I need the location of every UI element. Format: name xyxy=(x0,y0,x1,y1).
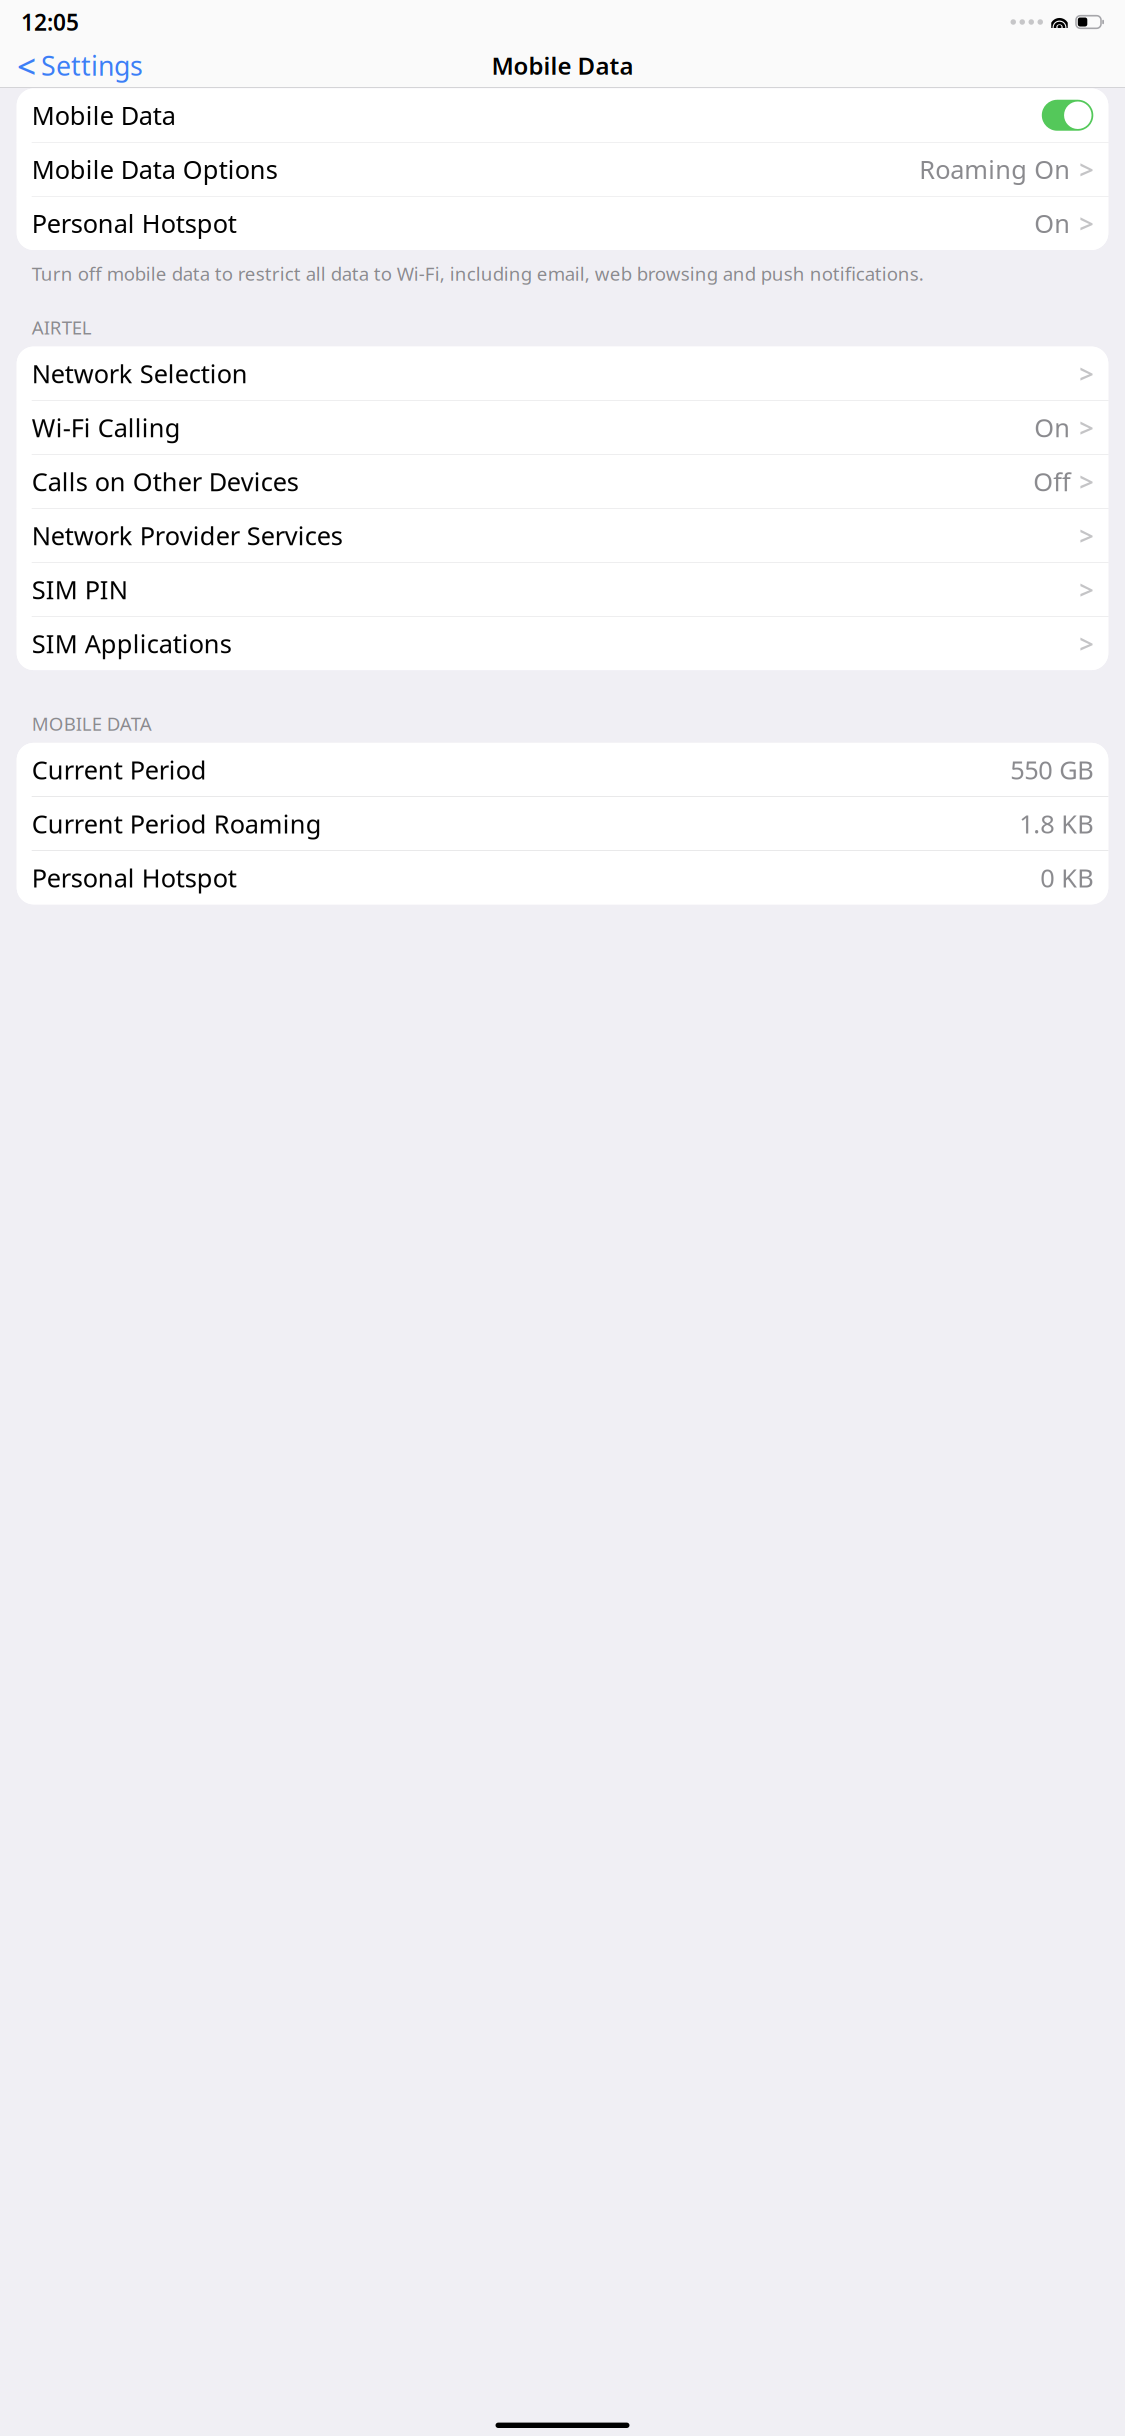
staticText: 1.8 KB xyxy=(1019,807,1093,840)
staticText: Mobile Data xyxy=(32,98,176,132)
staticText: Personal Hotspot xyxy=(32,206,237,240)
button[interactable]: < xyxy=(3,37,157,94)
staticText: > xyxy=(1079,464,1093,498)
button[interactable]: Current Period xyxy=(17,743,1108,796)
staticText: SIM PIN xyxy=(32,572,128,606)
button[interactable]: Current Period Roaming xyxy=(17,797,1108,850)
staticText: On xyxy=(1034,410,1070,444)
staticText: Off xyxy=(1033,464,1070,498)
staticText: Mobile Data xyxy=(491,50,633,81)
staticText: > xyxy=(1079,410,1093,444)
staticText: Current Period Roaming xyxy=(32,807,322,840)
staticText: > xyxy=(1079,152,1093,186)
staticText: 0 KB xyxy=(1040,861,1093,894)
button[interactable]: Personal Hotspot xyxy=(17,851,1108,904)
staticText: Personal Hotspot xyxy=(32,861,237,894)
staticText: Calls on Other Devices xyxy=(32,464,299,498)
staticText: Roaming On xyxy=(919,152,1070,186)
staticText: Network Selection xyxy=(32,356,248,390)
staticText: 12:05 xyxy=(21,7,79,37)
staticText: 550 GB xyxy=(1010,753,1093,786)
staticText: Turn off mobile data to restrict all dat… xyxy=(32,261,924,286)
staticText: > xyxy=(1079,356,1093,390)
button[interactable]: Network Selection xyxy=(17,347,1108,400)
button[interactable]: Mobile Data xyxy=(17,88,1108,142)
button[interactable]: SIM PIN xyxy=(17,563,1108,616)
button[interactable]: Mobile Data Options xyxy=(17,142,1108,196)
staticText: > xyxy=(1079,572,1093,606)
staticText: > xyxy=(1079,626,1093,660)
staticText: Network Provider Services xyxy=(32,518,343,552)
staticText: MOBILE DATA xyxy=(32,711,152,736)
staticText: > xyxy=(1079,206,1093,240)
staticText: AIRTEL xyxy=(32,315,92,340)
button[interactable]: SIM Applications xyxy=(17,617,1108,670)
staticText: < xyxy=(17,43,36,88)
staticText: Settings xyxy=(41,48,143,83)
staticText: Wi-Fi Calling xyxy=(32,410,181,444)
staticText: Mobile Data Options xyxy=(32,152,278,186)
button[interactable]: Personal Hotspot xyxy=(17,196,1108,250)
staticText: > xyxy=(1079,518,1093,552)
staticText: Current Period xyxy=(32,753,207,786)
button[interactable]: Calls on Other Devices xyxy=(17,455,1108,508)
staticText: On xyxy=(1034,206,1070,240)
button[interactable]: Wi-Fi Calling xyxy=(17,401,1108,454)
staticText: SIM Applications xyxy=(32,626,232,660)
button[interactable]: Network Provider Services xyxy=(17,509,1108,562)
